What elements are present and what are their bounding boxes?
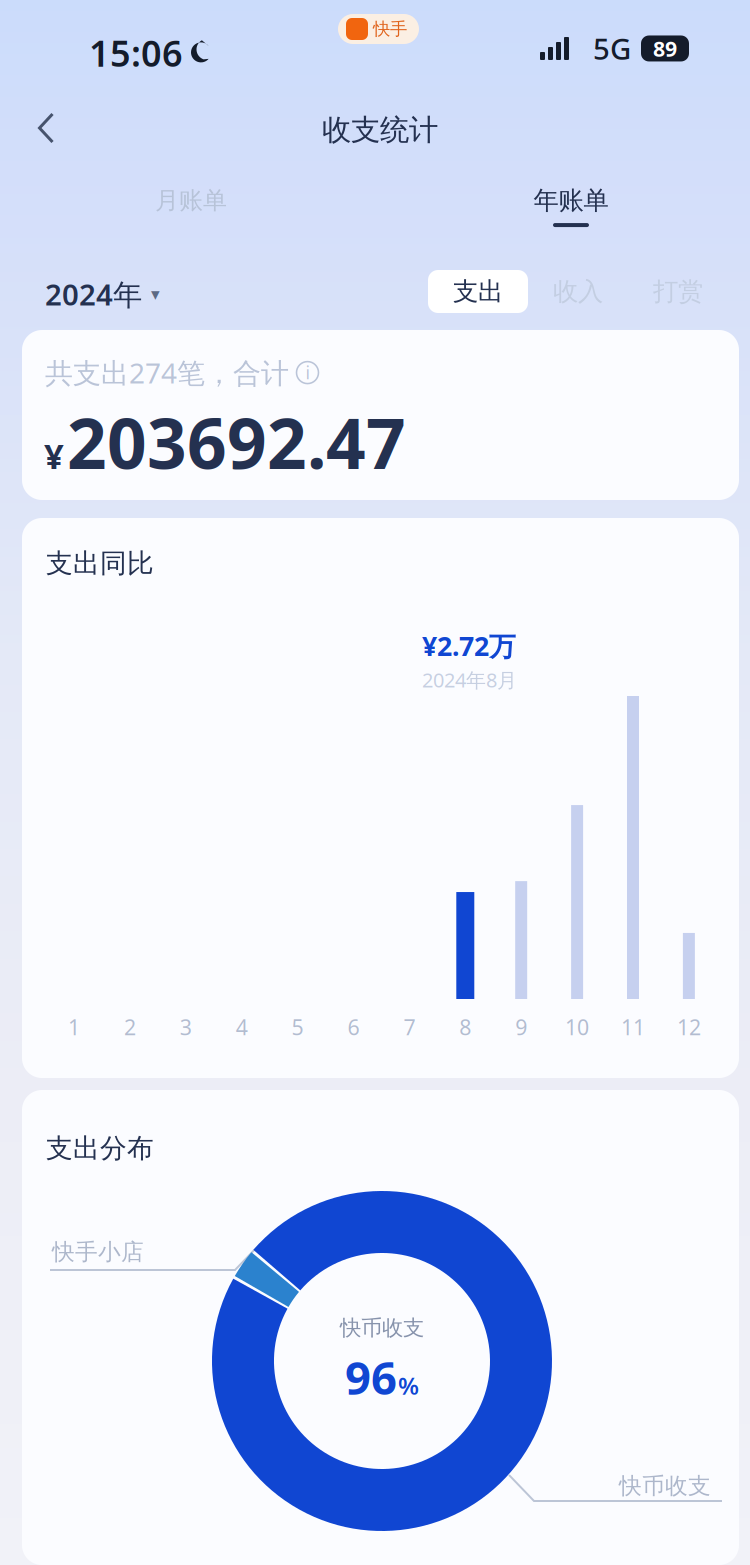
button[interactable]: 收入 — [528, 270, 628, 313]
button[interactable]: 月账单 — [96, 175, 286, 237]
staticText: 快币收支 — [619, 1472, 711, 1500]
staticText: 8 — [459, 1013, 471, 1041]
staticText: 2024年8月 — [422, 666, 517, 693]
staticText: 11 — [621, 1013, 645, 1041]
staticText: 203692.47 — [67, 396, 406, 488]
staticText: 年账单 — [533, 185, 608, 216]
staticText: 收支统计 — [322, 112, 438, 148]
staticText: 支出分布 — [46, 1132, 154, 1165]
staticText: 9 — [515, 1013, 527, 1041]
staticText: 89 — [653, 34, 677, 63]
staticText: 12 — [677, 1013, 701, 1041]
staticText: 96 — [345, 1347, 397, 1407]
staticText: 支出同比 — [46, 547, 154, 580]
staticText: 收入 — [553, 276, 603, 307]
staticText: 打赏 — [653, 276, 703, 307]
staticText: ¥2.72万 — [422, 628, 516, 663]
button[interactable]: 打赏 — [628, 270, 728, 313]
staticText: 1 — [68, 1013, 80, 1041]
staticText: ▾ — [151, 284, 160, 304]
staticText: 快手 — [373, 18, 407, 40]
staticText: 7 — [403, 1013, 415, 1041]
button[interactable]: 年账单 — [476, 175, 666, 237]
staticText: 快币收支 — [340, 1315, 424, 1341]
staticText: 15:06 — [89, 29, 183, 77]
staticText: 4 — [236, 1013, 248, 1041]
staticText: 月账单 — [155, 186, 227, 215]
staticText: 6 — [347, 1013, 359, 1041]
staticText: i — [305, 361, 309, 384]
staticText: 3 — [180, 1013, 192, 1041]
button[interactable]: 2024年 — [45, 272, 160, 316]
staticText: 5G — [593, 29, 631, 68]
staticText: 5 — [292, 1013, 304, 1041]
staticText: 2 — [124, 1013, 136, 1041]
staticText: 共支出274笔，合计 — [45, 354, 289, 391]
staticText: 快手小店 — [52, 1238, 144, 1266]
staticText: ¥ — [44, 432, 64, 478]
staticText: % — [398, 1369, 419, 1401]
button[interactable]: Back — [14, 96, 78, 160]
staticText: 10 — [565, 1013, 589, 1041]
staticText: 支出 — [453, 276, 503, 307]
button[interactable]: 支出 — [428, 270, 528, 313]
staticText: 2024年 — [45, 274, 142, 313]
